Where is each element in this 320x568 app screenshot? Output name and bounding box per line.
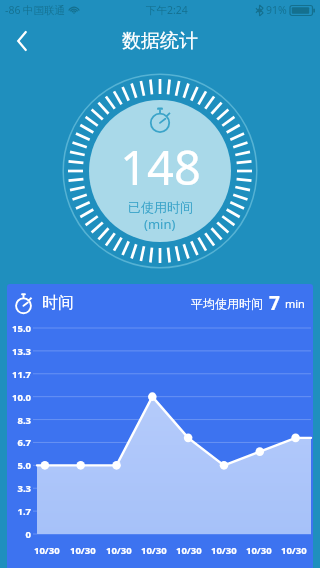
staticText: 8.3 — [7, 414, 31, 427]
staticText: 7 — [269, 290, 280, 316]
staticText: 10/30 — [70, 544, 96, 557]
staticText: 平均使用时间 — [191, 296, 263, 311]
staticText: 10/30 — [246, 544, 272, 557]
staticText: 10/30 — [176, 544, 202, 557]
staticText: -86 中国联通 — [5, 3, 66, 17]
staticText: 已使用时间 — [128, 199, 193, 215]
staticText: 6.7 — [7, 436, 31, 449]
staticText: 148 — [120, 135, 201, 199]
staticText: 0 — [7, 528, 31, 541]
staticText: 下午2:24 — [146, 3, 188, 17]
staticText: 3.3 — [7, 482, 31, 495]
staticText: 时间 — [42, 293, 74, 313]
staticText: 10/30 — [281, 544, 307, 557]
button[interactable]: Back — [0, 20, 44, 62]
staticText: 10/30 — [34, 544, 60, 557]
staticText: 10/30 — [106, 544, 132, 557]
staticText: 5.0 — [7, 459, 31, 472]
staticText: 10.0 — [7, 391, 31, 404]
button[interactable]: 时间 — [7, 284, 313, 568]
staticText: 1.7 — [7, 505, 31, 518]
staticText: 13.3 — [7, 345, 31, 358]
staticText: (min) — [144, 215, 176, 233]
staticText: 91% — [266, 3, 287, 17]
staticText: 11.7 — [7, 368, 31, 381]
staticText: 数据统计 — [122, 29, 198, 53]
staticText: 15.0 — [7, 322, 31, 335]
staticText: min — [285, 296, 305, 311]
staticText: 10/30 — [211, 544, 237, 557]
staticText: 10/30 — [141, 544, 167, 557]
